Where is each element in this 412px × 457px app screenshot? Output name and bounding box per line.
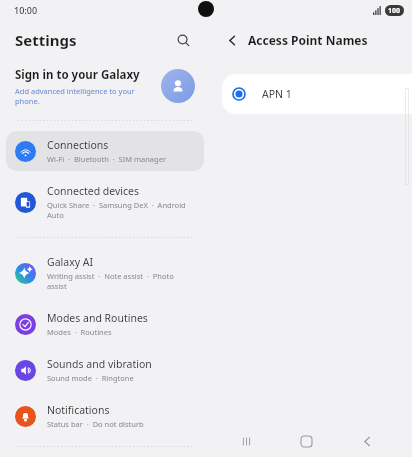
- button[interactable]: Connections: [6, 131, 204, 171]
- staticText: Notifications: [47, 403, 110, 417]
- staticText: Add advanced intelligence to your phone.: [15, 86, 161, 106]
- button[interactable]: Back: [352, 426, 382, 456]
- staticText: Quick Share · Samsung DeX · Android Auto: [47, 200, 195, 220]
- staticText: Connected devices: [47, 184, 140, 198]
- staticText: Writing assist · Note assist · Photo ass…: [47, 271, 195, 291]
- button[interactable]: APN 1: [222, 74, 412, 114]
- staticText: Modes · Routines: [47, 327, 112, 337]
- button[interactable]: Modes and Routines: [6, 304, 204, 344]
- staticText: Sound mode · Ringtone: [47, 373, 134, 383]
- button[interactable]: Home: [291, 426, 321, 456]
- button[interactable]: Notifications: [6, 396, 204, 436]
- staticText: Galaxy AI: [47, 255, 94, 269]
- button[interactable]: Recents: [231, 426, 261, 456]
- staticText: Settings: [15, 30, 77, 50]
- staticText: Status bar · Do not disturb: [47, 419, 144, 429]
- button[interactable]: Connected devices: [6, 177, 204, 227]
- staticText: Connections: [47, 138, 109, 152]
- button[interactable]: Sounds and vibration: [6, 350, 204, 390]
- staticText: Wi-Fi · Bluetooth · SIM manager: [47, 154, 166, 164]
- staticText: Sounds and vibration: [47, 357, 152, 371]
- staticText: APN 1: [262, 87, 412, 101]
- button[interactable]: Galaxy AI: [6, 248, 204, 298]
- staticText: 100: [388, 6, 401, 16]
- staticText: 10:00: [14, 4, 38, 16]
- button[interactable]: Search: [171, 28, 195, 52]
- staticText: Modes and Routines: [47, 311, 148, 325]
- staticText: Sign in to your Galaxy: [15, 67, 140, 83]
- button[interactable]: Back: [220, 28, 244, 52]
- staticText: Access Point Names: [248, 32, 412, 48]
- button[interactable]: Sign in to your Galaxy: [0, 60, 210, 112]
